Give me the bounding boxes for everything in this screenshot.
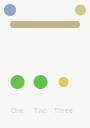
button[interactable]: Item one	[10, 75, 24, 89]
staticText: One	[11, 106, 24, 115]
button[interactable]: Status	[75, 4, 86, 15]
staticText: Two	[34, 106, 47, 115]
button[interactable]: Profile	[4, 4, 16, 16]
button[interactable]: Item three	[58, 77, 68, 87]
staticText: Three	[54, 106, 73, 115]
button[interactable]: Item two	[33, 75, 47, 89]
